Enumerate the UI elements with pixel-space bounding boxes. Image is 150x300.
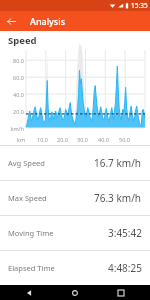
staticText: 76.3 km/h (94, 191, 142, 205)
button[interactable]: Back (22, 286, 36, 300)
staticText: Analysis (30, 15, 66, 27)
button[interactable]: Moving Time (0, 216, 150, 250)
staticText: 4:48:25 (108, 261, 142, 275)
button[interactable]: Home (68, 286, 82, 300)
staticText: Elapsed Time (8, 263, 55, 273)
staticText: Speed (8, 34, 37, 47)
staticText: 3:45:42 (108, 226, 142, 240)
staticText: 80.0 (1, 57, 24, 64)
button[interactable]: Elapsed Time (0, 251, 150, 285)
staticText: 15:35 (131, 1, 148, 10)
button[interactable]: Back (4, 14, 18, 28)
staticText: Moving Time (8, 228, 54, 238)
staticText: 40.0 (98, 136, 109, 143)
staticText: Avg Speed (8, 158, 45, 168)
button[interactable]: Avg Speed (0, 146, 150, 180)
staticText: 16.7 km/h (94, 156, 142, 170)
staticText: 50.0 (119, 136, 130, 143)
staticText: 20.0 (1, 108, 24, 115)
staticText: 30.0 (77, 136, 88, 143)
button[interactable]: Max Speed (0, 181, 150, 215)
staticText: km/h (1, 125, 24, 132)
staticText: Max Speed (8, 193, 47, 203)
staticText: 10.0 (37, 136, 48, 143)
staticText: 20.0 (57, 136, 68, 143)
staticText: km (17, 136, 26, 143)
button[interactable]: Recent apps (114, 286, 128, 300)
staticText: 60.0 (1, 74, 24, 81)
staticText: 40.0 (1, 91, 24, 98)
